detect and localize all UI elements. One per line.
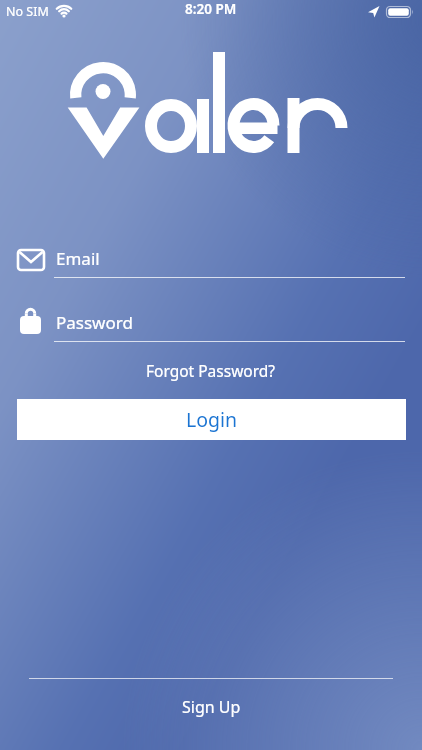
staticText: Forgot Password? bbox=[146, 360, 276, 381]
staticText: Password bbox=[56, 311, 133, 334]
button[interactable]: Login bbox=[17, 399, 406, 440]
button[interactable]: Password bbox=[0, 303, 422, 341]
staticText: Email bbox=[56, 247, 100, 270]
staticText: Sign Up bbox=[182, 696, 241, 718]
button[interactable]: Sign Up bbox=[182, 696, 241, 718]
staticText: 8:20 PM bbox=[185, 0, 237, 18]
button[interactable]: Forgot Password? bbox=[146, 360, 276, 381]
button[interactable]: Email bbox=[0, 244, 422, 280]
staticText: Login bbox=[186, 406, 238, 433]
staticText: No SIM bbox=[6, 3, 49, 20]
